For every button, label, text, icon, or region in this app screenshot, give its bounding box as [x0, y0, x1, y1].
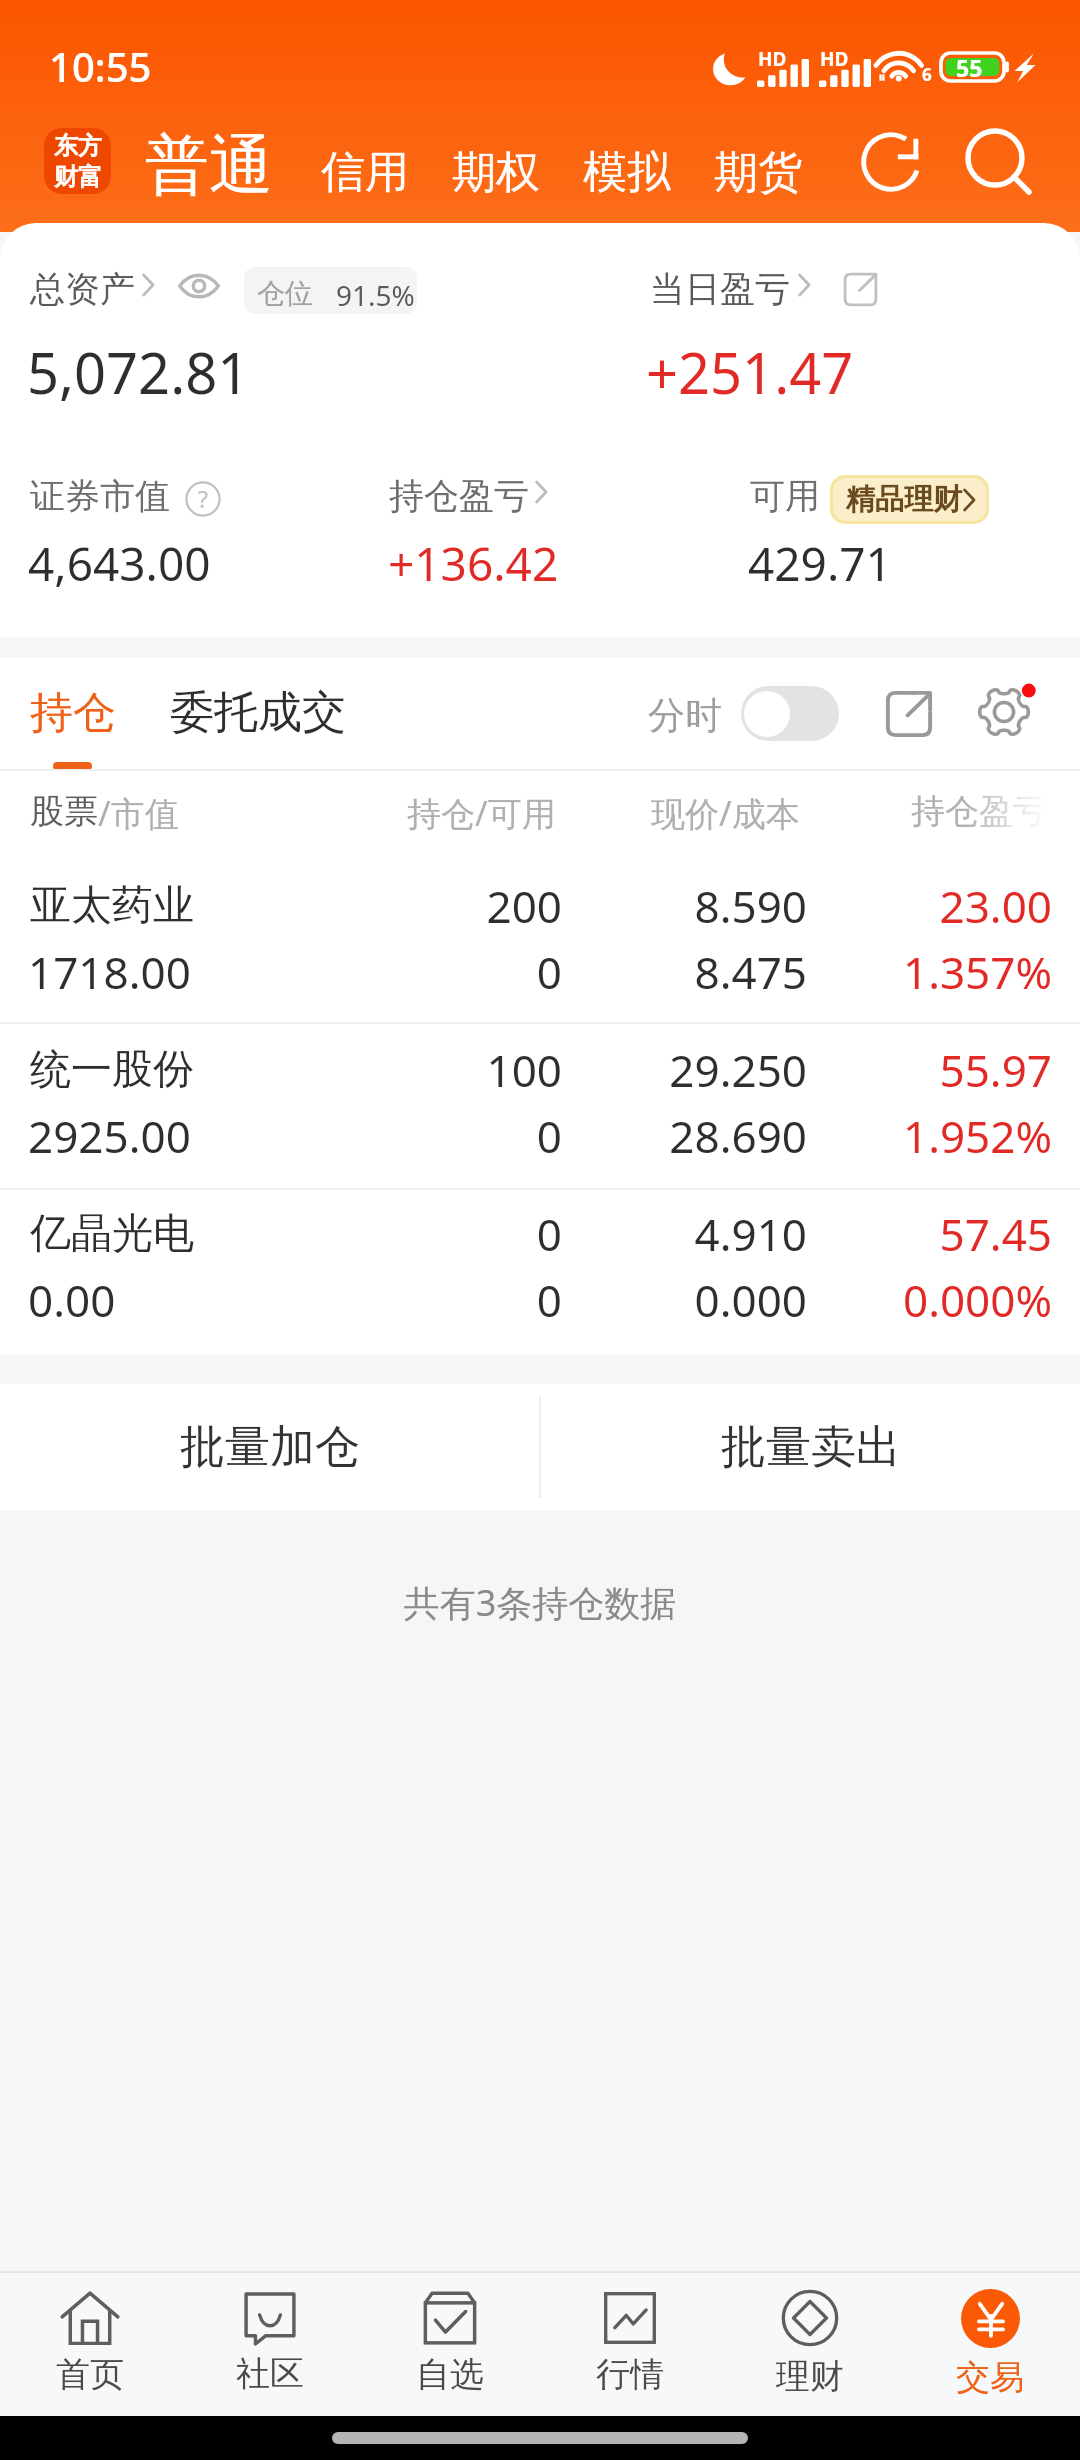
staticText: 29.250 [0, 1040, 807, 1100]
button[interactable]: 精品理财 [830, 475, 989, 524]
staticText: 仓位 [257, 276, 313, 311]
staticText: 自选 [416, 2353, 484, 2396]
button[interactable]: Search [956, 123, 1034, 201]
staticText: 亚太药业 [30, 880, 194, 932]
staticText: 当日盈亏 [650, 267, 790, 311]
staticText: 55.97 [0, 1040, 1052, 1100]
button[interactable]: 理财 [720, 2271, 900, 2416]
staticText: 交易 [956, 2356, 1024, 2399]
button[interactable]: 持仓盈亏 [389, 468, 551, 524]
staticText: 4.910 [0, 1204, 807, 1264]
button[interactable]: 期货 [714, 128, 802, 198]
button[interactable]: Open profit detail [836, 265, 885, 314]
staticText: 200 [0, 876, 562, 936]
staticText: 精品理财 [846, 481, 962, 518]
staticText: 模拟 [583, 145, 671, 200]
button[interactable]: 批量卖出 [541, 1384, 1080, 1510]
staticText: 财富 [54, 162, 102, 192]
button[interactable]: 统一股份 [0, 1044, 1080, 1186]
staticText: 429.71 [748, 532, 892, 595]
staticText: 6 [922, 63, 932, 86]
button[interactable]: 仓位 [244, 267, 417, 314]
staticText: 57.45 [0, 1204, 1052, 1264]
staticText: 首页 [56, 2353, 124, 2396]
staticText: 10:55 [49, 39, 152, 93]
staticText: 可用 [750, 474, 820, 518]
button[interactable]: 模拟 [583, 128, 671, 198]
staticText: /市值 [98, 790, 179, 836]
staticText: 分时 [648, 692, 722, 739]
staticText: 0.00 [28, 1270, 116, 1330]
button[interactable]: Intraday toggle [741, 686, 839, 741]
staticText: 2925.00 [28, 1106, 191, 1166]
staticText: 股票 [30, 790, 98, 833]
staticText: 东方 [54, 131, 102, 161]
staticText: 91.5% [336, 276, 415, 314]
staticText: 55 [956, 52, 983, 80]
button[interactable]: Expand [880, 685, 938, 743]
staticText: 亿晶光电 [30, 1208, 194, 1260]
staticText: 0 [0, 942, 562, 1002]
staticText: HD [758, 46, 787, 72]
staticText: +251.47 [646, 334, 854, 410]
button[interactable]: 批量加仓 [0, 1384, 539, 1510]
button[interactable]: 东方 [44, 128, 111, 194]
staticText: 现价/成本 [651, 790, 800, 836]
button[interactable]: Refresh [852, 123, 930, 201]
staticText: 4,643.00 [28, 532, 211, 595]
staticText: 总资产 [30, 267, 135, 311]
staticText: 持仓盈亏 [911, 790, 1047, 833]
staticText: 0 [0, 1204, 562, 1264]
staticText: 持仓/可用 [407, 790, 556, 836]
staticText: 0 [0, 1106, 562, 1166]
button[interactable]: 信用 [321, 128, 409, 198]
staticText: 0 [0, 1270, 562, 1330]
staticText: 共有3条持仓数据 [0, 1578, 1080, 1627]
staticText: 普通 [145, 125, 273, 206]
staticText: 8.590 [0, 876, 807, 936]
staticText: 批量加仓 [180, 1419, 360, 1476]
button[interactable]: 首页 [0, 2271, 180, 2416]
button[interactable]: 委托成交 [162, 672, 356, 768]
staticText: 委托成交 [170, 685, 346, 740]
staticText: 23.00 [0, 876, 1052, 936]
staticText: 持仓盈亏 [389, 474, 529, 518]
button[interactable]: Hide amounts [172, 263, 226, 309]
button[interactable]: 社区 [180, 2271, 360, 2416]
staticText: 行情 [596, 2353, 664, 2396]
staticText: 社区 [236, 2352, 304, 2395]
staticText: 信用 [321, 145, 409, 200]
staticText: 期权 [452, 145, 540, 200]
staticText: 期货 [714, 145, 802, 200]
button[interactable]: 期权 [452, 128, 540, 198]
staticText: 1.952% [0, 1106, 1052, 1166]
button[interactable]: 持仓 [22, 672, 124, 768]
button[interactable]: 总资产 [30, 261, 160, 317]
staticText: ? [198, 483, 208, 514]
staticText: 28.690 [0, 1106, 807, 1166]
button[interactable]: 亿晶光电 [0, 1208, 1080, 1350]
button[interactable]: Settings [962, 670, 1046, 754]
button[interactable]: 当日盈亏 [650, 261, 816, 317]
staticText: 0.000 [0, 1270, 807, 1330]
staticText: 5,072.81 [27, 334, 250, 410]
button[interactable]: 行情 [540, 2271, 720, 2416]
button[interactable]: What is market value [181, 477, 225, 521]
staticText: 100 [0, 1040, 562, 1100]
staticText: 理财 [776, 2355, 844, 2398]
staticText: 1.357% [0, 942, 1052, 1002]
staticText: 批量卖出 [721, 1419, 901, 1476]
staticText: +136.42 [388, 532, 559, 595]
button[interactable]: 自选 [360, 2271, 540, 2416]
button[interactable]: 普通 [145, 120, 273, 204]
staticText: 统一股份 [30, 1044, 194, 1096]
staticText: 持仓 [30, 686, 116, 740]
staticText: HD [820, 46, 849, 72]
button[interactable]: 亚太药业 [0, 880, 1080, 1022]
staticText: 1718.00 [28, 942, 191, 1002]
staticText: 0.000% [0, 1270, 1052, 1330]
button[interactable]: 交易 [900, 2271, 1080, 2416]
staticText: 证券市值 [30, 474, 170, 518]
staticText: 8.475 [0, 942, 807, 1002]
